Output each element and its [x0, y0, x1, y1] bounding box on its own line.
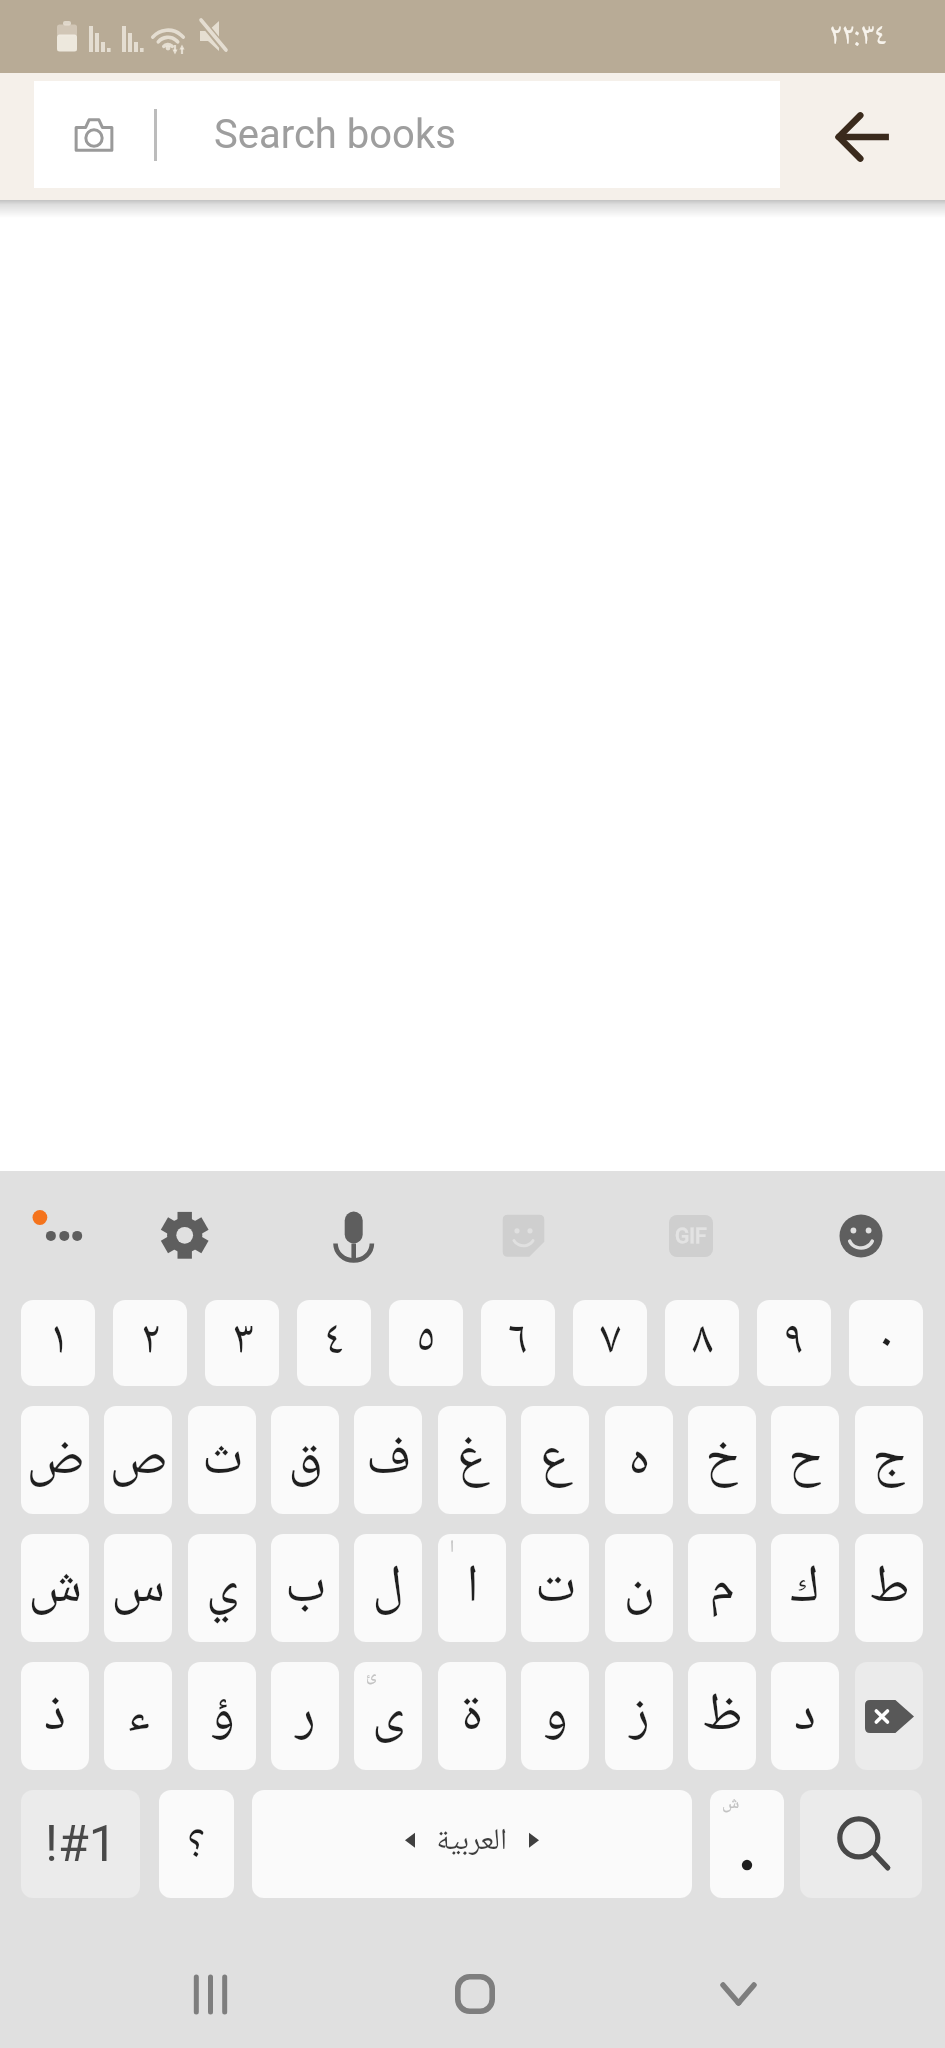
button[interactable]: ص	[104, 1406, 172, 1514]
button[interactable]: ٢	[113, 1300, 187, 1386]
button[interactable]: غ	[438, 1406, 506, 1514]
button[interactable]: د	[771, 1662, 839, 1770]
button[interactable]: ت	[521, 1534, 589, 1642]
staticText: غ	[456, 1423, 489, 1495]
staticText: ا	[466, 1551, 479, 1623]
button[interactable]: ح	[771, 1406, 839, 1514]
button[interactable]: ه	[605, 1406, 673, 1514]
button[interactable]: Voice input	[312, 1171, 396, 1300]
button[interactable]: Keyboard settings	[143, 1171, 227, 1300]
staticText: ل	[372, 1551, 404, 1623]
staticText: ا	[450, 1536, 455, 1559]
button[interactable]: Search	[800, 1790, 922, 1898]
staticText: ح	[788, 1423, 822, 1495]
staticText: د	[794, 1679, 816, 1751]
button[interactable]: ش	[21, 1534, 89, 1642]
button[interactable]: ٩	[757, 1300, 831, 1386]
button[interactable]: ي	[188, 1534, 256, 1642]
button[interactable]: ر	[271, 1662, 339, 1770]
staticText: س	[111, 1551, 165, 1623]
staticText: ر	[295, 1679, 316, 1751]
button[interactable]: ش	[710, 1790, 784, 1898]
staticText: ١	[51, 1309, 66, 1373]
button[interactable]: Home	[420, 1939, 530, 2048]
staticText: ش	[722, 1792, 740, 1815]
button[interactable]: Back	[780, 73, 945, 200]
button[interactable]: العربية	[252, 1790, 692, 1898]
staticText: ف	[366, 1423, 411, 1495]
staticText: ٢	[140, 1309, 160, 1373]
button[interactable]: ط	[855, 1534, 923, 1642]
staticText: ئ	[366, 1664, 377, 1687]
button[interactable]: ة	[438, 1662, 506, 1770]
staticText: خ	[705, 1423, 739, 1495]
button[interactable]: ئ	[354, 1662, 422, 1770]
button[interactable]: ن	[605, 1534, 673, 1642]
button[interactable]: ؤ	[188, 1662, 256, 1770]
button[interactable]: م	[688, 1534, 756, 1642]
staticText: ب	[285, 1551, 326, 1623]
staticText: ذ	[44, 1679, 66, 1751]
staticText: ٣	[231, 1309, 254, 1373]
button[interactable]: !#1	[21, 1790, 140, 1898]
button[interactable]: ف	[354, 1406, 422, 1514]
staticText: ٠	[879, 1309, 894, 1373]
button[interactable]: س	[104, 1534, 172, 1642]
staticText: ع	[539, 1423, 572, 1495]
staticText: ص	[109, 1423, 168, 1495]
staticText: ٩	[784, 1309, 805, 1373]
staticText: ؤ	[210, 1679, 235, 1751]
button[interactable]: ٤	[297, 1300, 371, 1386]
staticText: ت	[535, 1551, 576, 1623]
button[interactable]: ج	[855, 1406, 923, 1514]
button[interactable]: ك	[771, 1534, 839, 1642]
button[interactable]: Recents	[155, 1939, 265, 2048]
staticText: ٤	[324, 1309, 344, 1373]
staticText: ق	[288, 1423, 323, 1495]
staticText: ؟	[187, 1813, 206, 1873]
button[interactable]: Backspace	[855, 1662, 923, 1770]
staticText: ى	[372, 1679, 405, 1751]
staticText: ط	[869, 1551, 910, 1623]
button[interactable]: ض	[21, 1406, 89, 1514]
button[interactable]: و	[521, 1662, 589, 1770]
button[interactable]: ٠	[849, 1300, 923, 1386]
button[interactable]: ز	[605, 1662, 673, 1770]
button[interactable]: ل	[354, 1534, 422, 1642]
button[interactable]: ٦	[481, 1300, 555, 1386]
button[interactable]: ١	[21, 1300, 95, 1386]
button[interactable]: ٣	[205, 1300, 279, 1386]
staticText: ء	[126, 1679, 150, 1751]
button[interactable]: ٥	[389, 1300, 463, 1386]
button[interactable]: GIF	[649, 1171, 733, 1300]
staticText: العربية	[436, 1821, 508, 1862]
button[interactable]: ء	[104, 1662, 172, 1770]
button[interactable]: ق	[271, 1406, 339, 1514]
button[interactable]: Stickers	[481, 1171, 565, 1300]
button[interactable]: ع	[521, 1406, 589, 1514]
staticText: ٥	[417, 1309, 435, 1373]
staticText: م	[709, 1551, 735, 1623]
staticText: ه	[628, 1423, 650, 1495]
button[interactable]: ٧	[573, 1300, 647, 1386]
button[interactable]: ث	[188, 1406, 256, 1514]
button[interactable]: Emoji	[819, 1171, 903, 1300]
button[interactable]: Search by image	[34, 81, 780, 188]
staticText: ن	[623, 1551, 655, 1623]
button[interactable]: ا	[438, 1534, 506, 1642]
button[interactable]: ظ	[688, 1662, 756, 1770]
staticText: ث	[202, 1423, 243, 1495]
staticText: ٢٢:٣٤	[829, 16, 887, 57]
staticText: ة	[461, 1679, 483, 1751]
button[interactable]: Hide keyboard	[683, 1939, 793, 2048]
other: Search by image	[75, 116, 113, 154]
staticText: ج	[872, 1423, 906, 1495]
button[interactable]: ٨	[665, 1300, 739, 1386]
button[interactable]: More options	[14, 1171, 98, 1300]
button[interactable]: ب	[271, 1534, 339, 1642]
staticText: GIF	[675, 1224, 707, 1249]
button[interactable]: ذ	[21, 1662, 89, 1770]
button[interactable]: خ	[688, 1406, 756, 1514]
button[interactable]: ؟	[159, 1790, 234, 1898]
staticText: Search books	[214, 111, 456, 158]
